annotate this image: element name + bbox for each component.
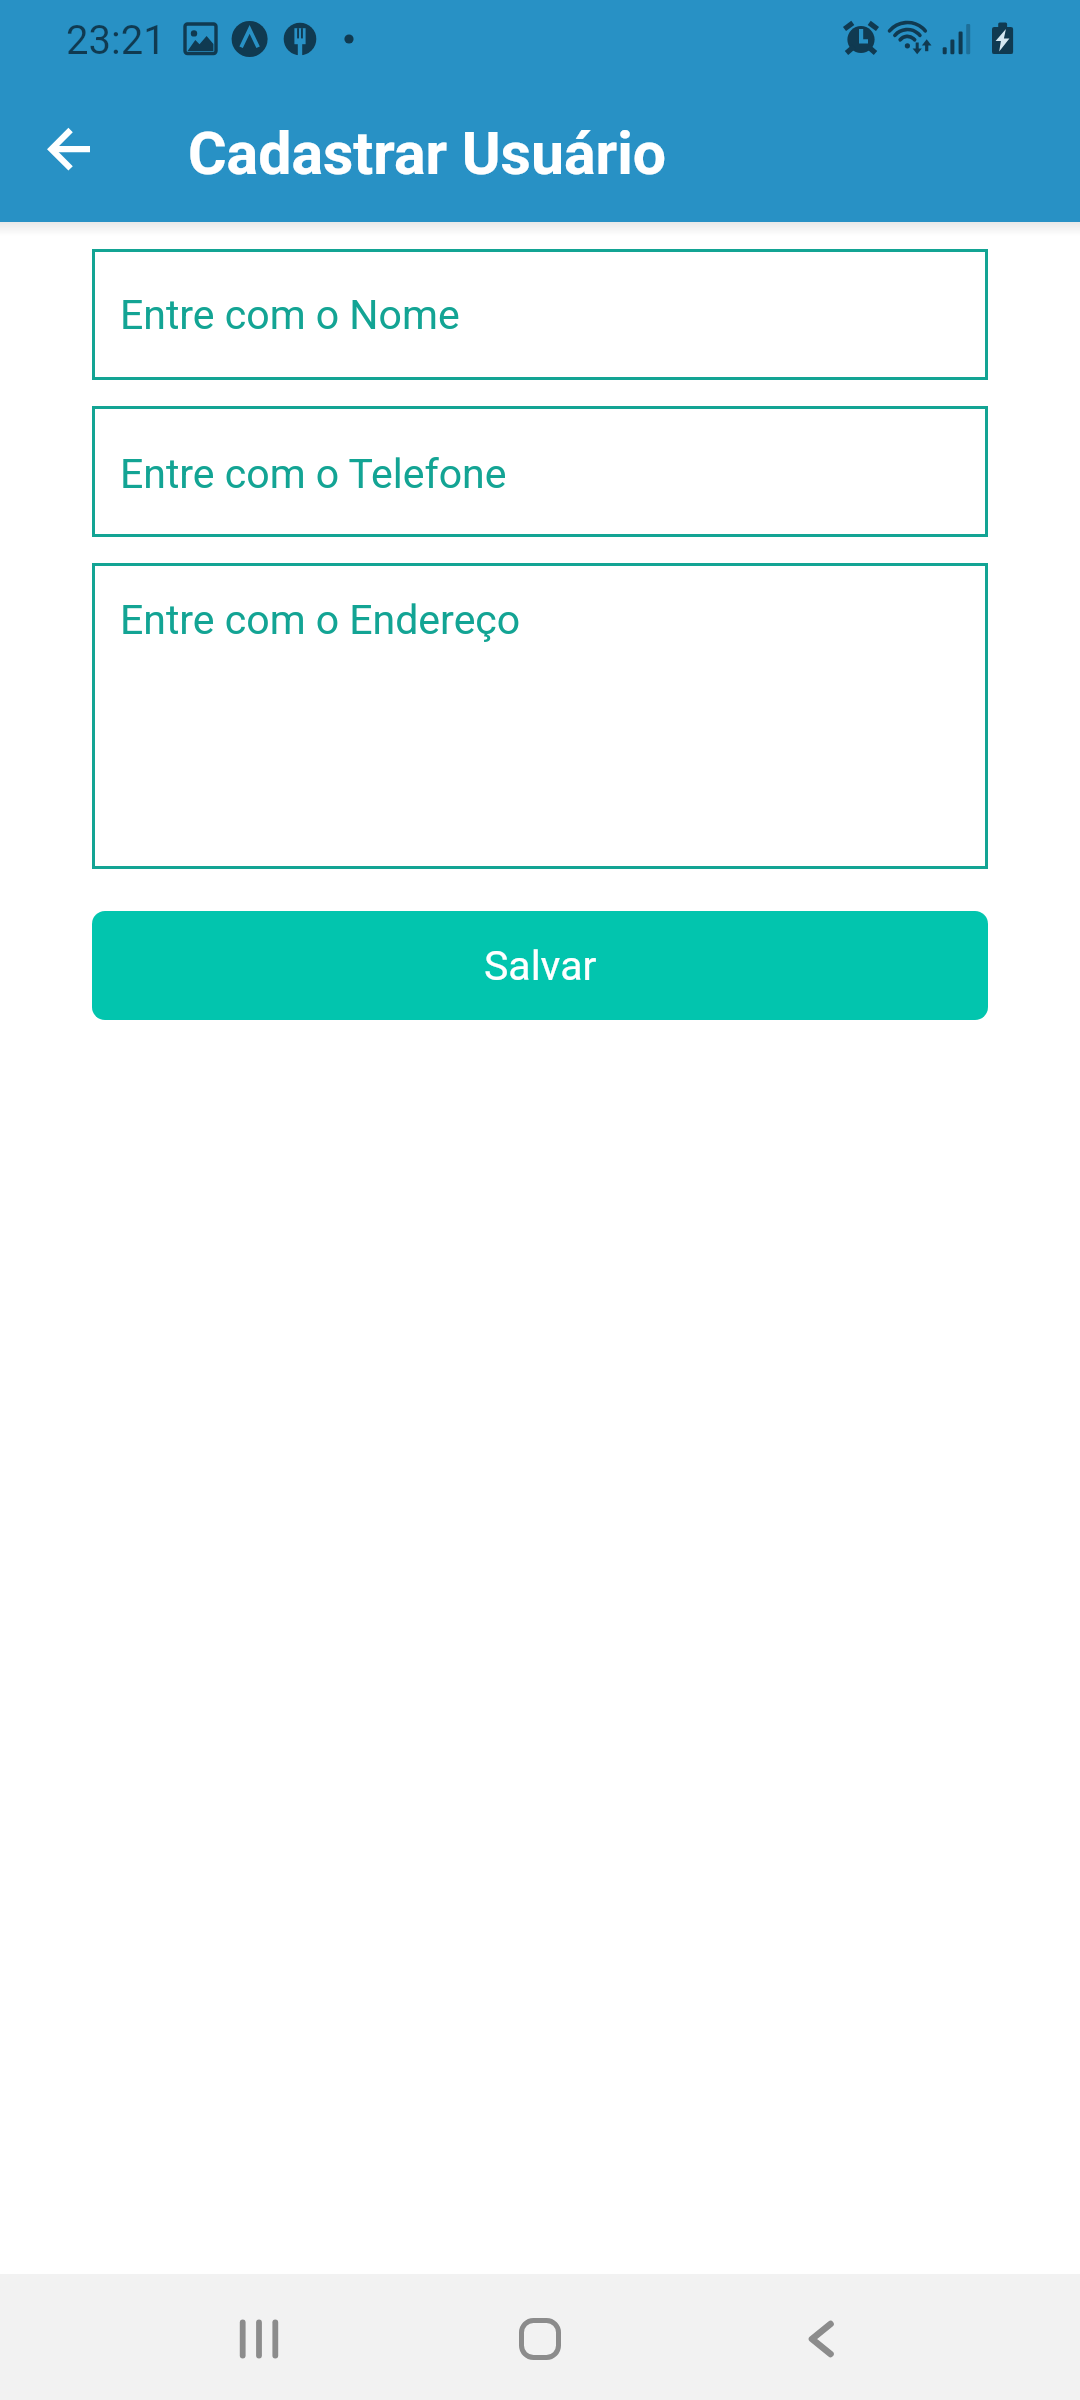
button[interactable]: Back — [20, 101, 116, 197]
button[interactable]: Entre com o Telefone — [92, 406, 988, 537]
staticText: 23:21 — [66, 17, 166, 64]
staticText: Cadastrar Usuário — [188, 119, 667, 188]
staticText: Entre com o Endereço — [120, 596, 521, 644]
staticText: Entre com o Telefone — [120, 450, 507, 498]
button[interactable]: Entre com o Nome — [92, 249, 988, 380]
staticText: Entre com o Nome — [120, 291, 460, 339]
button[interactable]: Salvar — [92, 911, 988, 1020]
button[interactable]: Entre com o Endereço — [92, 563, 988, 869]
button[interactable]: Back — [758, 2274, 884, 2400]
staticText: Salvar — [484, 942, 597, 990]
button[interactable]: Home — [477, 2274, 603, 2400]
button[interactable]: Recent apps — [196, 2274, 322, 2400]
